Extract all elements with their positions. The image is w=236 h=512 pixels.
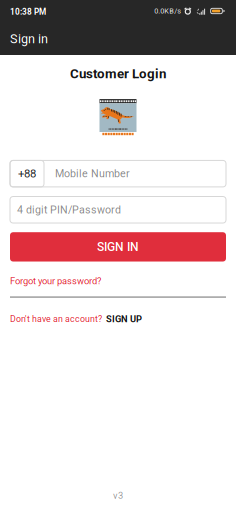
- staticText: 4 digit PIN/Password: [17, 203, 121, 216]
- staticText: SIGN IN: [97, 240, 139, 254]
- button[interactable]: Forgot your password?: [10, 276, 101, 286]
- button[interactable]: SIGN UP: [106, 314, 142, 324]
- staticText: Customer Login: [70, 66, 166, 82]
- staticText: Sign in: [10, 32, 48, 46]
- staticText: SIGN UP: [106, 314, 142, 324]
- staticText: Forgot your password?: [10, 276, 101, 286]
- staticText: 0.0KB/s: [154, 7, 181, 15]
- staticText: 10:38 PM: [10, 7, 46, 17]
- staticText: Mobile Number: [55, 167, 130, 180]
- button[interactable]: SIGN IN: [10, 232, 226, 261]
- staticText: Don't have an account?: [10, 314, 102, 324]
- staticText: v3: [113, 490, 123, 501]
- staticText: +88: [18, 167, 36, 180]
